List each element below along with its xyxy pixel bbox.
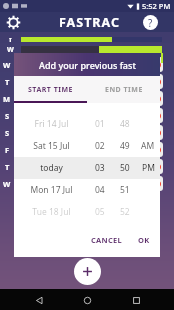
staticText: AM [141, 140, 155, 152]
staticText: PM [142, 162, 155, 174]
staticText: 51 [120, 184, 130, 196]
button[interactable]: START TIME [14, 76, 87, 103]
staticText: Mon 17 Jul [30, 184, 73, 196]
button[interactable]: today [14, 157, 160, 179]
button[interactable] [14, 108, 163, 123]
staticText: Add your previous fast [39, 59, 136, 71]
staticText: M [3, 94, 11, 104]
button[interactable]: Tue 18 Jul [14, 201, 160, 223]
button[interactable]: CANCEL [87, 231, 127, 249]
staticText: S [5, 128, 10, 138]
staticText: 02 [95, 140, 105, 152]
staticText: today [40, 162, 63, 174]
staticText: FASTRAC [59, 14, 120, 31]
staticText: T [5, 162, 10, 172]
staticText: W [3, 179, 11, 189]
button[interactable] [14, 91, 163, 106]
staticText: 5:52 PM [142, 1, 171, 11]
staticText: Fri 14 Jul [34, 118, 69, 130]
staticText: I [9, 36, 12, 42]
button[interactable]: OK [134, 231, 154, 249]
button[interactable]: Recents [126, 290, 146, 310]
staticText: T [5, 77, 10, 87]
button[interactable]: Home [77, 290, 97, 310]
staticText: 48 [120, 118, 130, 130]
staticText: ? [148, 16, 153, 30]
staticText: Sat 15 Jul [33, 140, 70, 152]
button[interactable]: Settings [4, 13, 22, 31]
button[interactable] [14, 176, 163, 191]
button[interactable]: Back [29, 290, 49, 310]
staticText: F [5, 145, 10, 155]
staticText: 50 [120, 162, 130, 174]
staticText: 04 [95, 184, 105, 196]
button[interactable]: Sat 15 Jul [14, 135, 160, 157]
button[interactable] [14, 125, 163, 140]
button[interactable]: Add fast [74, 258, 101, 285]
staticText: 49 [120, 140, 130, 152]
staticText: END TIME [105, 85, 143, 95]
button[interactable]: Fri 14 Jul [14, 113, 160, 135]
staticText: OK [138, 235, 150, 245]
button[interactable]: Mon 17 Jul [14, 179, 160, 201]
button[interactable] [14, 142, 163, 157]
staticText: 03 [95, 162, 105, 174]
staticText: Tue 18 Jul [32, 206, 71, 218]
staticText: 05 [95, 206, 105, 218]
button[interactable] [14, 74, 163, 89]
button[interactable]: Help [143, 15, 158, 30]
staticText: W [7, 45, 14, 53]
staticText: 01 [95, 118, 105, 130]
staticText: START TIME [28, 85, 73, 95]
button[interactable] [14, 159, 163, 174]
staticText: W [3, 60, 11, 70]
staticText: S [5, 111, 10, 121]
staticText: CANCEL [91, 235, 123, 245]
button[interactable]: END TIME [87, 76, 160, 103]
button[interactable] [14, 57, 163, 72]
staticText: 52 [120, 206, 130, 218]
